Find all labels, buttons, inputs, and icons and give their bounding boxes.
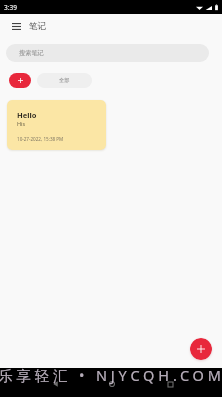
- button[interactable]: Add note: [190, 338, 212, 360]
- button[interactable]: 搜索笔记: [6, 44, 209, 62]
- staticText: 10-27-2022, 15:38 PM: [17, 136, 64, 142]
- button[interactable]: Hello: [7, 100, 106, 150]
- staticText: His: [17, 120, 26, 127]
- button[interactable]: Menu: [7, 15, 25, 37]
- staticText: 笔记: [29, 21, 46, 32]
- button[interactable]: Recents: [163, 377, 177, 391]
- button[interactable]: Back: [48, 377, 62, 391]
- staticText: 搜索笔记: [19, 49, 44, 57]
- button[interactable]: 全部: [37, 73, 92, 88]
- staticText: 乐享轻汇 • NJYCQH.COM: [0, 365, 220, 385]
- button[interactable]: Home: [105, 377, 119, 391]
- staticText: 全部: [59, 77, 70, 84]
- staticText: Hello: [17, 110, 37, 120]
- button[interactable]: Add category: [9, 73, 31, 88]
- staticText: 3:39: [4, 3, 17, 12]
